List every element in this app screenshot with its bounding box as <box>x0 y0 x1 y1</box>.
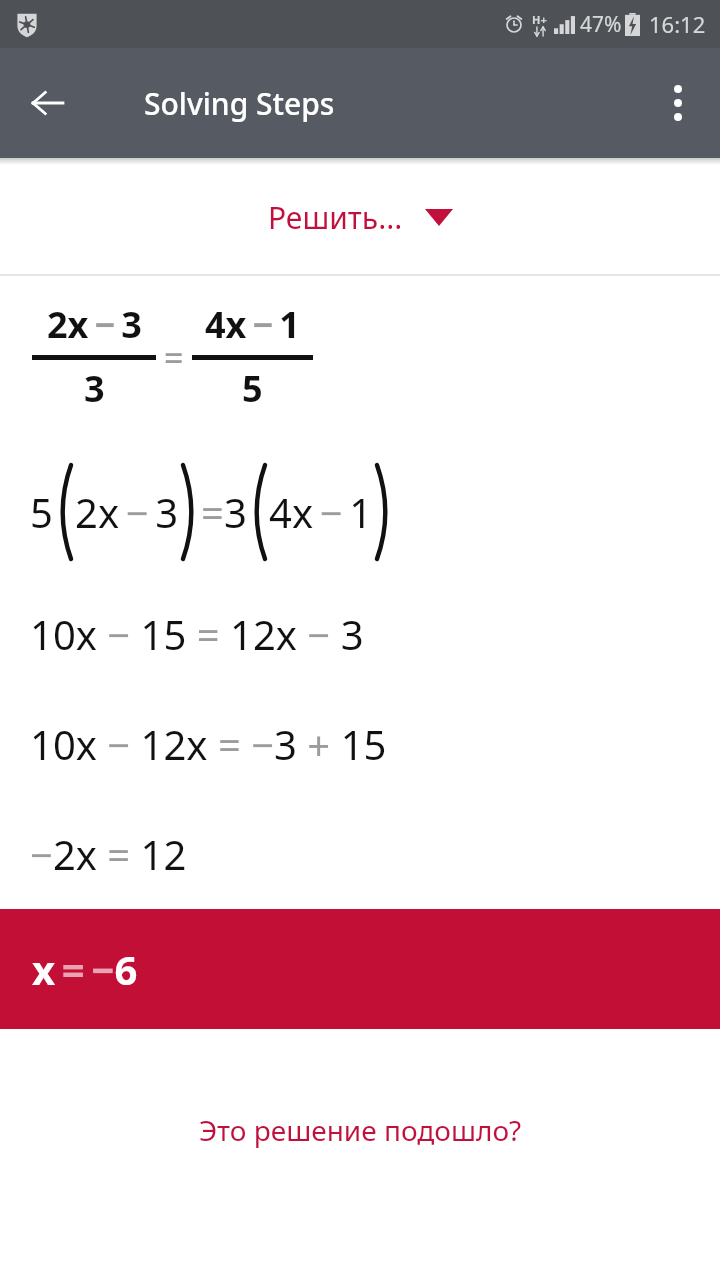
button[interactable]: x = −6 <box>0 909 720 1029</box>
staticText: 2x − 3 <box>47 300 142 349</box>
staticText: H+ <box>532 12 547 27</box>
button[interactable]: Решить... <box>256 191 465 244</box>
staticText: = <box>164 334 184 380</box>
staticText: 2x − 3 <box>75 485 179 539</box>
staticText: 5 <box>242 364 263 413</box>
staticText: 16:12 <box>649 9 706 39</box>
staticText: 10x − 15 = 12x − 3 <box>30 607 720 661</box>
staticText: Solving Steps <box>144 83 335 124</box>
staticText: 4x − 1 <box>269 485 373 539</box>
button[interactable]: More options <box>642 67 714 139</box>
button[interactable]: Back <box>12 67 84 139</box>
staticText: 10x − 12x = −3 + 15 <box>30 717 720 771</box>
staticText: = <box>201 485 224 539</box>
staticText: 47% <box>580 10 622 39</box>
staticText: x = −6 <box>32 942 138 996</box>
staticText: 4x − 1 <box>205 300 300 349</box>
staticText: −2x = 12 <box>30 827 720 881</box>
staticText: 3 <box>84 364 105 413</box>
button[interactable]: Это решение подошло? <box>183 1101 538 1159</box>
staticText: 3 <box>224 485 247 539</box>
staticText: Решить... <box>268 197 403 238</box>
staticText: 5 <box>30 485 53 539</box>
